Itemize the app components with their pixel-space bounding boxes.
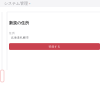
- staticText: 新規の住所: [9, 20, 29, 25]
- staticText: ▾: [29, 2, 30, 5]
- staticText: システム管理: [4, 1, 28, 6]
- button[interactable]: Menu: [0, 70, 4, 82]
- button[interactable]: 登録する: [9, 43, 100, 50]
- staticText: 登録する: [48, 45, 60, 48]
- button[interactable]: システム管理: [0, 0, 100, 7]
- staticText: 北海道札幌市: [11, 36, 29, 39]
- staticText: 住所: [9, 31, 15, 35]
